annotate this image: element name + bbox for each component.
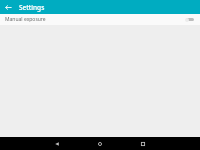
button[interactable]: Navigate up xyxy=(3,2,14,13)
staticText: Settings xyxy=(19,3,45,12)
button[interactable]: Manual exposure xyxy=(0,14,200,25)
button[interactable]: Home xyxy=(94,138,105,149)
button[interactable]: Back xyxy=(51,138,62,149)
staticText: Manual exposure xyxy=(5,16,46,23)
button[interactable]: Manual exposure toggle xyxy=(185,16,194,23)
button[interactable]: Recent apps xyxy=(137,138,148,149)
